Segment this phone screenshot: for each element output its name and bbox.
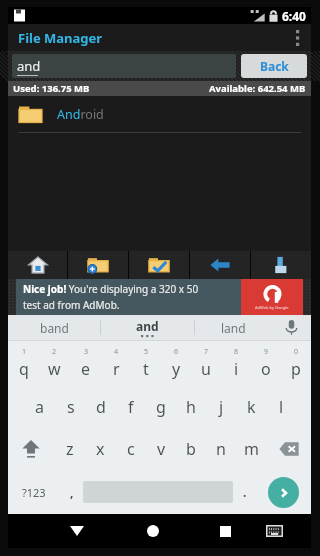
button[interactable]: 5 [131,341,161,386]
staticText: i [234,358,239,380]
button[interactable]: and [12,54,236,78]
button[interactable]: 3 [70,341,101,386]
button[interactable]: Switch keyboard [250,514,299,548]
staticText: AdMob by Google [255,305,289,310]
staticText: Android [57,106,104,123]
staticText: land [221,320,246,336]
button[interactable]: Select folder [129,251,189,279]
button[interactable]: 4 [101,341,131,386]
button[interactable]: Voice input [271,315,311,340]
button[interactable]: Recent apps [201,514,250,548]
button[interactable]: c [116,428,146,470]
button[interactable]: ?123 [8,470,60,514]
staticText: 8 [234,347,239,357]
button[interactable]: Back [190,251,250,279]
staticText: j [219,396,224,418]
button[interactable]: land [195,315,271,340]
button[interactable]: x [85,428,116,470]
staticText: 6:40 [282,8,306,24]
button[interactable]: z [54,428,85,470]
staticText: y [172,358,181,380]
button[interactable]: a [24,386,55,428]
staticText: w [48,358,61,380]
button[interactable]: 8 [221,341,251,386]
staticText: test ad from AdMob. [23,298,120,312]
button[interactable]: b [176,428,206,470]
button[interactable]: 1 [8,341,39,386]
staticText: File Manager [18,29,103,47]
staticText: e [81,358,91,380]
staticText: 0 [294,347,299,357]
staticText: Back [260,58,289,74]
staticText: o [261,358,271,380]
staticText: and [136,318,159,334]
staticText: g [156,396,166,418]
button[interactable]: Home [8,251,67,279]
staticText: 3 [84,347,89,357]
staticText: q [19,358,29,380]
button[interactable]: 0 [281,341,311,386]
button[interactable]: 6 [161,341,191,386]
staticText: and [17,57,41,75]
button[interactable]: band [8,315,100,340]
staticText: t [143,358,149,380]
button[interactable]: 9 [251,341,281,386]
button[interactable]: Shift [8,428,54,470]
staticText: k [247,396,256,418]
staticText: band [40,320,69,336]
staticText: 5 [144,347,149,357]
button[interactable]: 2 [39,341,70,386]
button[interactable]: l [266,386,296,428]
staticText: , [70,484,74,500]
button[interactable]: j [206,386,236,428]
staticText: d [96,396,106,418]
button[interactable]: f [116,386,146,428]
button[interactable]: Paste [251,251,311,279]
staticText: s [67,396,75,418]
button[interactable]: d [86,386,116,428]
button[interactable]: Period [233,470,256,514]
button[interactable]: g [146,386,176,428]
staticText: . [243,484,247,500]
button[interactable]: k [236,386,266,428]
staticText: x [96,438,105,460]
staticText: r [113,358,120,380]
button[interactable]: Home [128,514,177,548]
button[interactable]: More options [285,24,311,51]
staticText: 1 [22,347,27,357]
staticText: z [66,438,74,460]
staticText: 6 [174,347,179,357]
staticText: h [186,396,196,418]
button[interactable]: Back [241,54,307,78]
button[interactable]: m [236,428,266,470]
staticText: m [244,438,259,460]
staticText: a [35,396,44,418]
staticText: l [279,396,284,418]
button[interactable]: n [206,428,236,470]
staticText: c [127,438,135,460]
button[interactable]: h [176,386,206,428]
staticText: 7 [204,347,209,357]
button[interactable]: Android [8,96,311,132]
staticText: u [201,358,211,380]
button[interactable]: Delete [266,428,311,470]
staticText: Used: 136.75 MB [13,82,90,95]
button[interactable]: s [55,386,86,428]
staticText: 9 [264,347,269,357]
staticText: 4 [114,347,119,357]
staticText: b [186,438,196,460]
button[interactable]: Hide keyboard [52,514,101,548]
button[interactable]: 7 [191,341,221,386]
staticText: v [157,438,166,460]
button[interactable]: and [101,315,194,340]
staticText: Nice job! You're displaying a 320 x 50 [23,282,199,296]
staticText: n [216,438,226,460]
button[interactable]: New folder [68,251,128,279]
button[interactable]: Comma [60,470,83,514]
button[interactable]: Nice job! You're displaying a 320 x 50 [8,279,311,315]
button[interactable]: File Manager [8,24,311,51]
staticText: f [128,396,134,418]
button[interactable]: Enter [256,470,311,514]
button[interactable]: v [146,428,176,470]
